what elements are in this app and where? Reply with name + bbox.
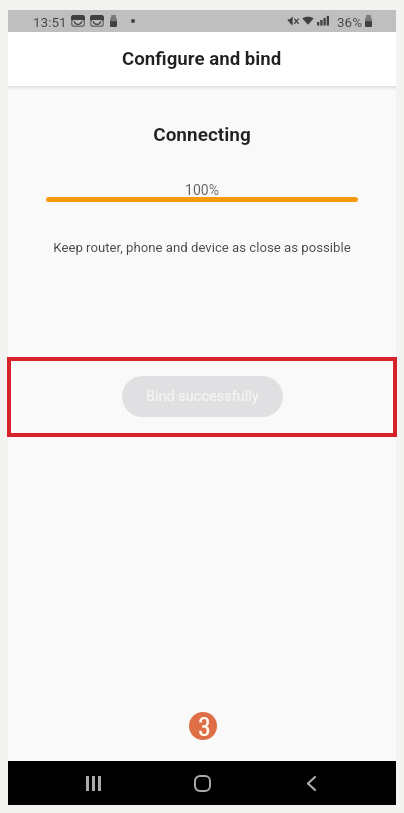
staticText: Keep router, phone and device as close a…	[8, 240, 396, 255]
staticText: 13:51	[33, 14, 67, 30]
staticText: 36%	[337, 14, 363, 30]
button[interactable]: Bind successfully	[122, 376, 283, 417]
staticText: Bind successfully	[146, 388, 259, 405]
button[interactable]: Back	[287, 761, 335, 805]
staticText: Connecting	[8, 123, 396, 145]
button[interactable]: Step 3	[189, 712, 217, 740]
staticText: 3	[198, 712, 211, 740]
staticText: 100%	[8, 182, 396, 198]
button[interactable]: Home	[178, 761, 226, 805]
staticText: Configure and bind	[122, 48, 282, 70]
button[interactable]: Recent apps	[69, 761, 117, 805]
